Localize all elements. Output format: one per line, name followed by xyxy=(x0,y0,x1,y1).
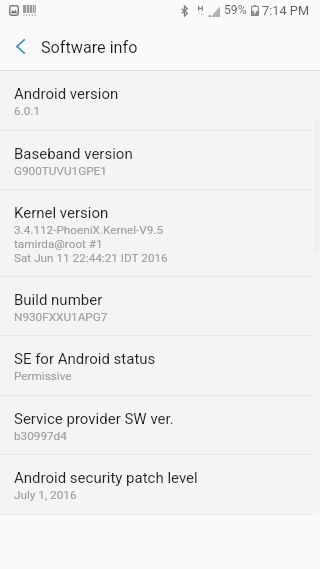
button[interactable]: Android version xyxy=(0,71,320,130)
staticText: Kernel version xyxy=(14,204,109,222)
staticText: 7:14 PM xyxy=(262,3,310,18)
staticText: Permissive xyxy=(14,369,72,383)
staticText: SE for Android status xyxy=(14,350,156,368)
staticText: 3.4.112-PhoeniX.Kernel-V9.5 tamirda@root… xyxy=(14,223,168,265)
staticText: N930FXXU1APG7 xyxy=(14,310,108,324)
button[interactable]: SE for Android status xyxy=(0,336,320,395)
button[interactable]: Kernel version xyxy=(0,190,320,276)
staticText: G900TUVU1GPE1 xyxy=(14,164,107,178)
staticText: Android security patch level xyxy=(14,469,198,487)
staticText: 59% xyxy=(224,3,247,17)
staticText: Android version xyxy=(14,85,119,103)
staticText: Baseband version xyxy=(14,145,133,163)
button[interactable]: Baseband version xyxy=(0,131,320,189)
button[interactable]: Service provider SW ver. xyxy=(0,396,320,454)
staticText: 6.0.1 xyxy=(14,104,41,118)
staticText: Software info xyxy=(41,38,138,57)
button[interactable]: Build number xyxy=(0,277,320,335)
staticText: b30997d4 xyxy=(14,429,67,443)
staticText: July 1, 2016 xyxy=(14,488,77,502)
button[interactable]: Navigate up xyxy=(0,24,40,71)
staticText: Build number xyxy=(14,291,103,309)
button[interactable]: Android security patch level xyxy=(0,455,320,514)
staticText: Service provider SW ver. xyxy=(14,410,174,428)
